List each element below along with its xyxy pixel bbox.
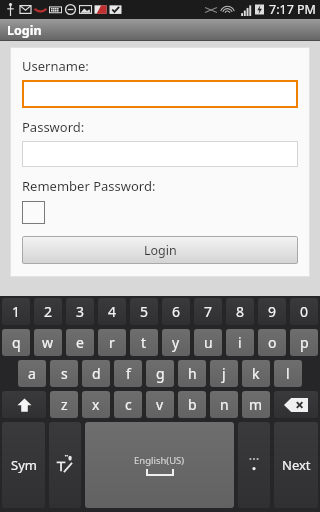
staticText: b: [188, 395, 197, 414]
staticText: Login: [144, 242, 177, 259]
button[interactable]: 2: [34, 298, 62, 325]
staticText: q: [12, 333, 21, 352]
staticText: Username:: [22, 57, 89, 75]
staticText: h: [188, 364, 197, 383]
button[interactable]: Next: [274, 422, 318, 508]
button[interactable]: Backspace: [274, 391, 318, 418]
button[interactable]: d: [82, 360, 110, 387]
button[interactable]: j: [210, 360, 238, 387]
button[interactable]: b: [178, 391, 206, 418]
staticText: 3: [76, 302, 85, 321]
button[interactable]: 4: [98, 298, 126, 325]
button[interactable]: i: [226, 329, 254, 356]
button[interactable]: g: [146, 360, 174, 387]
button[interactable]: n: [210, 391, 238, 418]
staticText: u: [204, 333, 213, 352]
button[interactable]: [22, 201, 45, 224]
staticText: 7: [204, 302, 213, 321]
staticText: a: [28, 364, 36, 383]
staticText: 7:17 PM: [269, 1, 316, 18]
staticText: m: [249, 395, 263, 414]
button[interactable]: z: [50, 391, 78, 418]
staticText: t: [141, 333, 147, 352]
button[interactable]: c: [114, 391, 142, 418]
button[interactable]: 9: [258, 298, 286, 325]
button[interactable]: Sym: [2, 422, 45, 508]
button[interactable]: x: [82, 391, 110, 418]
button[interactable]: Voice input: [49, 422, 81, 508]
staticText: 1: [12, 302, 21, 321]
staticText: j: [222, 364, 226, 383]
staticText: x: [92, 395, 100, 414]
button[interactable]: o: [258, 329, 286, 356]
staticText: Login: [7, 22, 42, 39]
staticText: k: [252, 364, 260, 383]
staticText: d: [92, 364, 101, 383]
staticText: 4: [108, 302, 117, 321]
button[interactable]: Period: [238, 422, 270, 508]
staticText: s: [61, 364, 68, 383]
button[interactable]: 7: [194, 298, 222, 325]
button[interactable]: l: [274, 360, 302, 387]
button[interactable]: v: [146, 391, 174, 418]
button[interactable]: a: [18, 360, 46, 387]
button[interactable]: p: [290, 329, 318, 356]
button[interactable]: u: [194, 329, 222, 356]
button[interactable]: 8: [226, 298, 254, 325]
staticText: v: [156, 395, 164, 414]
staticText: 5: [140, 302, 149, 321]
staticText: c: [125, 395, 132, 414]
staticText: 8: [236, 302, 245, 321]
button[interactable]: f: [114, 360, 142, 387]
button[interactable]: h: [178, 360, 206, 387]
staticText: y: [172, 333, 180, 352]
button[interactable]: 5: [130, 298, 158, 325]
staticText: l: [286, 364, 290, 383]
button[interactable]: t: [130, 329, 158, 356]
staticText: n: [220, 395, 229, 414]
staticText: e: [76, 333, 84, 352]
staticText: f: [126, 364, 131, 383]
staticText: i: [238, 333, 242, 352]
staticText: 2: [44, 302, 53, 321]
staticText: English(US): [134, 454, 185, 467]
button[interactable]: [22, 141, 298, 167]
button[interactable]: r: [98, 329, 126, 356]
staticText: w: [42, 333, 54, 352]
staticText: Remember Password:: [22, 177, 156, 195]
staticText: p: [300, 333, 309, 352]
button[interactable]: 0: [290, 298, 318, 325]
button[interactable]: 1: [2, 298, 30, 325]
staticText: g: [156, 364, 165, 383]
button[interactable]: 6: [162, 298, 190, 325]
staticText: 6: [172, 302, 181, 321]
staticText: Next: [282, 456, 311, 474]
button[interactable]: q: [2, 329, 30, 356]
button[interactable]: w: [34, 329, 62, 356]
button[interactable]: m: [242, 391, 270, 418]
button[interactable]: e: [66, 329, 94, 356]
staticText: z: [61, 395, 68, 414]
staticText: o: [268, 333, 277, 352]
button[interactable]: [22, 80, 298, 108]
button[interactable]: k: [242, 360, 270, 387]
staticText: 0: [300, 302, 309, 321]
button[interactable]: s: [50, 360, 78, 387]
button[interactable]: y: [162, 329, 190, 356]
button[interactable]: Shift: [2, 391, 46, 418]
staticText: Password:: [22, 118, 85, 136]
staticText: Sym: [11, 456, 37, 474]
staticText: r: [109, 333, 115, 352]
button[interactable]: Space: [85, 422, 234, 508]
button[interactable]: Login: [22, 236, 298, 264]
staticText: 9: [268, 302, 277, 321]
button[interactable]: 3: [66, 298, 94, 325]
